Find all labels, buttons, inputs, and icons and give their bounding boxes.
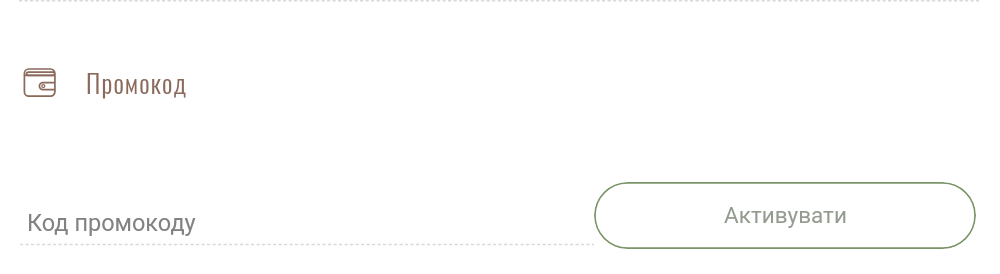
staticText: Активувати <box>724 202 847 228</box>
button[interactable]: Активувати <box>594 182 976 249</box>
staticText: Код промокоду <box>27 209 196 237</box>
button[interactable]: Promo code wallet <box>14 58 200 106</box>
button[interactable]: Код промокоду <box>20 196 594 244</box>
other: Promo code wallet <box>14 58 62 106</box>
staticText: Промокод <box>86 64 188 102</box>
